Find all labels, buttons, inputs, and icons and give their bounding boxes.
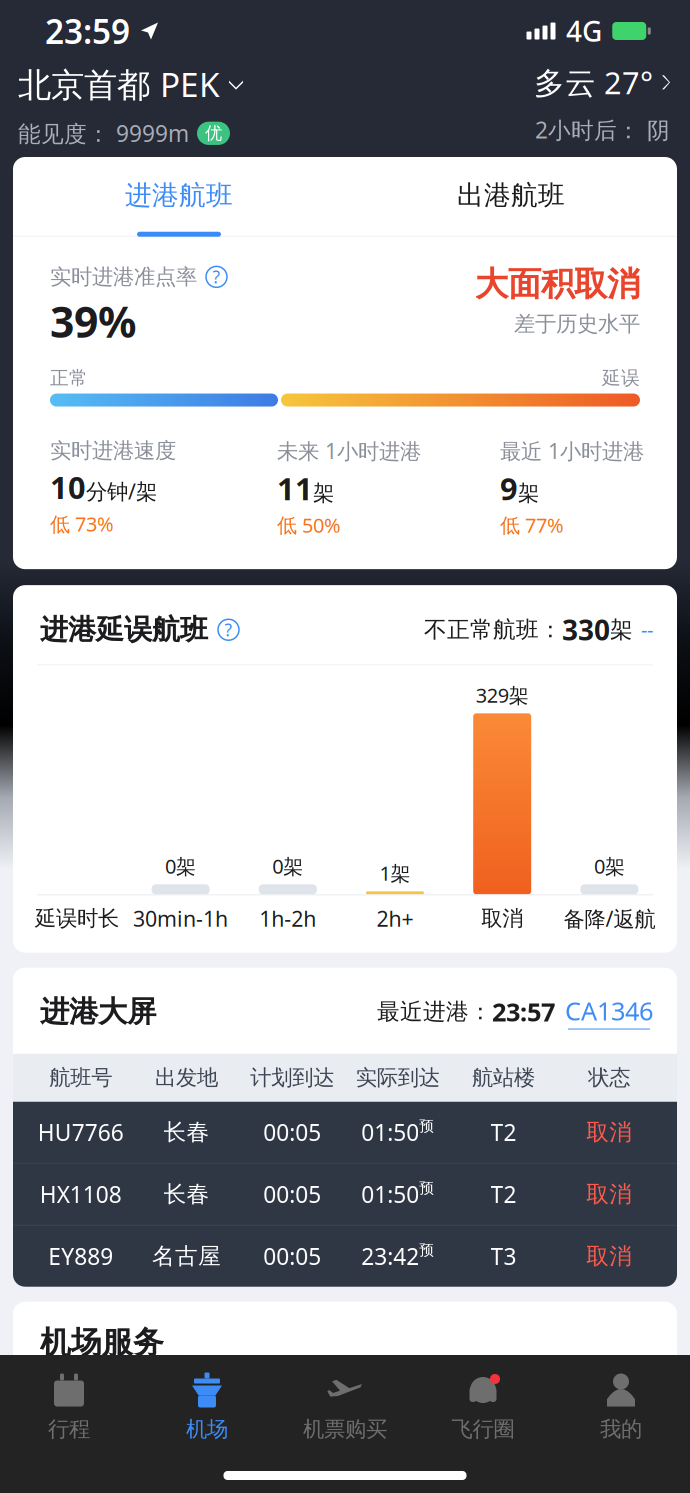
staticText: 2h+ [376, 904, 413, 933]
staticText: 2小时后： 阴 [535, 115, 670, 145]
staticText: 大面积取消 [475, 264, 640, 305]
staticText: 北京首都 PEK [18, 62, 220, 106]
staticText: 多云 27° [534, 62, 653, 103]
staticText: 机票购买 [303, 1416, 387, 1442]
staticText: 取消 [481, 905, 523, 932]
staticText: 0架 [272, 853, 303, 879]
staticText: 最近进港： [377, 998, 492, 1026]
staticText: 优 [205, 123, 222, 144]
staticText: 差于历史水平 [514, 311, 640, 337]
staticText: 11 [277, 468, 313, 509]
staticText: CA1346 [565, 994, 653, 1027]
staticText: 航站楼 [472, 1065, 535, 1091]
staticText: 架 [610, 616, 633, 644]
staticText: T2 [490, 1117, 516, 1147]
staticText: 延误 [602, 367, 640, 389]
button[interactable]: CA1346 [565, 994, 653, 1029]
button[interactable]: 机场 [138, 1371, 276, 1442]
staticText: 01:50 [361, 1117, 419, 1147]
staticText: 23:59 [45, 9, 130, 53]
staticText: 长春 [163, 1180, 209, 1208]
staticText: ? [224, 618, 232, 641]
staticText: 23:57 [492, 995, 555, 1028]
staticText: 我的 [600, 1416, 642, 1442]
staticText: 名古屋 [152, 1242, 221, 1270]
staticText: 00:05 [263, 1179, 321, 1209]
staticText: 出发地 [155, 1065, 218, 1091]
staticText: 低 50% [277, 512, 341, 538]
staticText: 进港航班 [125, 179, 233, 212]
staticText: 预 [419, 1117, 434, 1135]
staticText: 未来 1小时进港 [277, 436, 421, 465]
staticText: 39% [50, 293, 136, 350]
staticText: 机场 [186, 1416, 228, 1442]
staticText: 最近 1小时进港 [500, 436, 644, 465]
staticText: 分钟/架 [86, 477, 157, 505]
staticText: 取消 [586, 1118, 632, 1146]
staticText: 实际到达 [356, 1065, 440, 1091]
button[interactable]: 多云 27° [534, 62, 670, 145]
staticText: 计划到达 [250, 1065, 334, 1091]
staticText: 架 [518, 480, 539, 506]
staticText: ? [212, 265, 220, 288]
button[interactable]: 行程 [0, 1371, 138, 1442]
staticText: 实时进港速度 [50, 438, 176, 464]
staticText: 00:05 [263, 1117, 321, 1147]
staticText: 航班号 [49, 1065, 112, 1091]
staticText: 00:05 [263, 1241, 321, 1271]
staticText: 30min-1h [133, 904, 228, 933]
staticText: 低 77% [500, 512, 564, 538]
staticText: 预 [419, 1179, 434, 1197]
staticText: 330 [562, 611, 610, 648]
staticText: 能见度： 9999m [18, 118, 189, 148]
staticText: T2 [490, 1179, 516, 1209]
staticText: 取消 [586, 1180, 632, 1208]
staticText: 行程 [48, 1416, 90, 1442]
button[interactable]: 出港航班 [345, 179, 677, 237]
staticText: 状态 [588, 1065, 630, 1091]
staticText: 正常 [50, 367, 88, 389]
button[interactable]: 飞行圈 [414, 1371, 552, 1442]
staticText: 实时进港准点率 [50, 264, 197, 290]
button[interactable]: HX1108 [13, 1164, 677, 1225]
staticText: 延误时长 [35, 905, 119, 932]
button[interactable]: 我的 [552, 1371, 690, 1442]
staticText: T3 [490, 1241, 516, 1271]
staticText: 4G [566, 12, 602, 50]
staticText: 进港延误航班 [40, 613, 208, 647]
staticText: 进港大屏 [40, 994, 156, 1030]
staticText: 0架 [594, 853, 625, 879]
staticText: 出港航班 [457, 179, 565, 212]
button[interactable]: EY889 [13, 1226, 677, 1287]
staticText: 机场服务 [40, 1324, 164, 1361]
staticText: 329架 [476, 682, 529, 708]
staticText: HX1108 [40, 1179, 122, 1209]
button[interactable]: HU7766 [13, 1102, 677, 1163]
staticText: 备降/返航 [563, 904, 655, 933]
staticText: 飞行圈 [451, 1416, 514, 1442]
staticText: 23:42 [361, 1241, 419, 1271]
staticText: 长春 [163, 1118, 209, 1146]
staticText: 架 [313, 480, 334, 506]
button[interactable]: 北京首都 PEK [18, 62, 244, 148]
staticText: 9 [500, 468, 518, 509]
staticText: 1h-2h [259, 904, 316, 933]
staticText: 不正常航班： [424, 616, 562, 644]
staticText: -- [641, 616, 653, 643]
staticText: HU7766 [38, 1117, 124, 1147]
staticText: 01:50 [361, 1179, 419, 1209]
staticText: 0架 [165, 853, 196, 879]
staticText: EY889 [48, 1241, 113, 1271]
staticText: 10 [50, 467, 86, 507]
staticText: 1架 [379, 860, 410, 886]
staticText: 取消 [586, 1242, 632, 1270]
staticText: 低 73% [50, 510, 114, 537]
button[interactable]: 进港航班 [13, 179, 345, 237]
staticText: 预 [419, 1241, 434, 1259]
button[interactable]: 机票购买 [276, 1371, 414, 1442]
